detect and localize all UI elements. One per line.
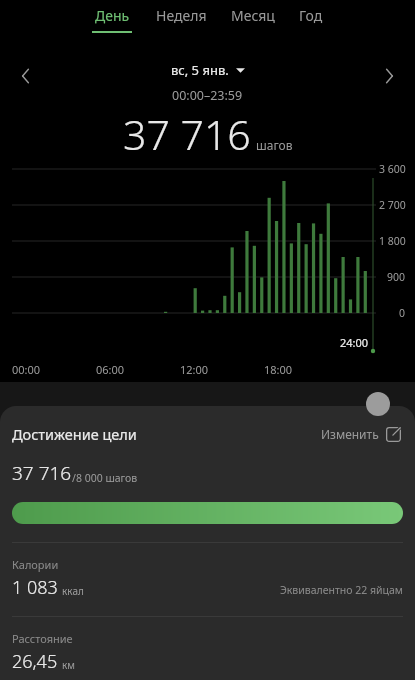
- staticText: ккал: [62, 584, 84, 598]
- staticText: Год: [299, 6, 323, 25]
- button[interactable]: Год: [295, 0, 327, 39]
- staticText: 0: [399, 306, 406, 320]
- staticText: Эквивалентно 22 яйцам: [280, 583, 403, 597]
- staticText: 37 716: [12, 460, 72, 486]
- staticText: 1 083: [12, 575, 58, 600]
- staticText: 12:00: [180, 362, 209, 377]
- staticText: 26,45: [12, 649, 58, 674]
- staticText: 900: [387, 270, 406, 284]
- staticText: км: [62, 658, 75, 672]
- staticText: День: [95, 6, 130, 25]
- button[interactable]: Неделя: [152, 0, 211, 39]
- staticText: Месяц: [231, 6, 275, 25]
- staticText: 00:00–23:59: [172, 87, 243, 104]
- button[interactable]: Next day: [369, 56, 409, 96]
- staticText: 3 600: [379, 162, 406, 176]
- staticText: Расстояние: [12, 631, 73, 646]
- staticText: 18:00: [264, 362, 293, 377]
- staticText: Калории: [12, 557, 59, 572]
- staticText: Неделя: [156, 6, 207, 25]
- button[interactable]: Месяц: [227, 0, 279, 39]
- staticText: 1 800: [379, 234, 406, 248]
- staticText: Изменить: [321, 426, 379, 442]
- staticText: 06:00: [96, 362, 125, 377]
- button[interactable]: Previous day: [6, 56, 46, 96]
- button[interactable]: Изменить: [319, 424, 403, 444]
- staticText: шагов: [256, 137, 293, 153]
- staticText: 24:00: [340, 335, 369, 350]
- staticText: Достижение цели: [12, 424, 137, 444]
- staticText: 00:00: [12, 362, 41, 377]
- staticText: 37 716: [123, 106, 251, 160]
- staticText: 2 700: [379, 198, 406, 212]
- staticText: /8 000 шагов: [72, 471, 138, 485]
- button[interactable]: Scrub handle: [366, 392, 390, 416]
- staticText: вс, 5 янв.: [171, 61, 229, 79]
- button[interactable]: вс, 5 янв.: [171, 61, 245, 79]
- button[interactable]: День: [88, 0, 136, 39]
